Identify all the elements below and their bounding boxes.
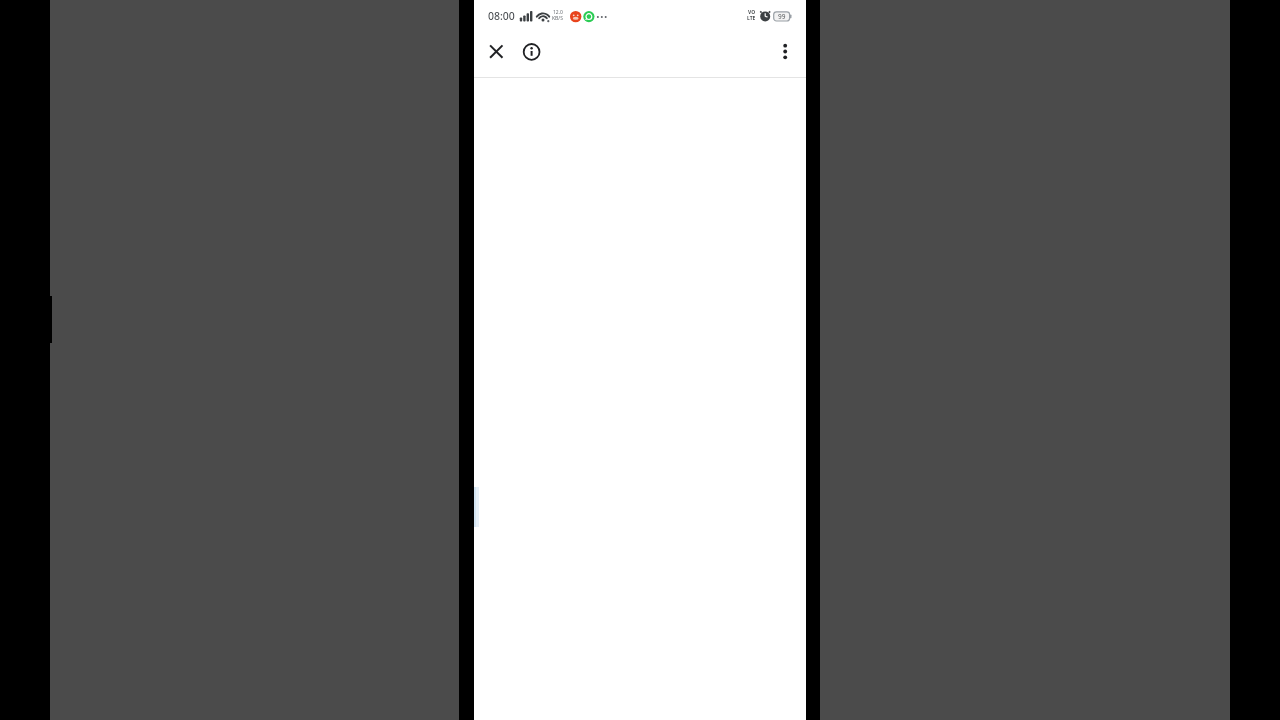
staticText: 99 [778,12,786,21]
button[interactable] [771,37,800,66]
staticText: LTE [747,15,756,22]
staticText: VO [748,9,756,16]
staticText: 12.0 [553,9,563,16]
button[interactable] [482,37,511,66]
staticText: KB/S [552,15,563,22]
staticText: 08:00 [488,9,515,23]
button[interactable] [517,37,546,66]
